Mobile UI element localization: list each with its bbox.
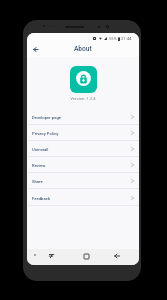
button[interactable]: Privacy Policy xyxy=(27,125,139,141)
staticText: Version: 1.2.4 xyxy=(27,96,139,101)
button[interactable]: Review xyxy=(27,157,139,173)
staticText: Uninstall xyxy=(32,147,49,152)
staticText: Share xyxy=(32,179,43,184)
button[interactable]: Back xyxy=(29,43,42,56)
button[interactable]: Back xyxy=(112,251,122,261)
button[interactable]: Feedback xyxy=(27,190,139,206)
button[interactable]: Home xyxy=(81,251,91,261)
button[interactable]: Uninstall xyxy=(27,141,139,157)
staticText: 55% xyxy=(109,36,117,41)
staticText: Privacy Policy xyxy=(32,131,59,136)
staticText: Developer page xyxy=(32,115,62,120)
staticText: Review xyxy=(32,163,46,168)
button[interactable]: Share xyxy=(27,173,139,189)
button[interactable]: Developer page xyxy=(27,109,139,125)
staticText: About xyxy=(74,45,92,53)
staticText: 21:44 xyxy=(121,36,132,41)
button[interactable]: Hide keyboard xyxy=(49,253,54,258)
staticText: Feedback xyxy=(32,196,51,201)
